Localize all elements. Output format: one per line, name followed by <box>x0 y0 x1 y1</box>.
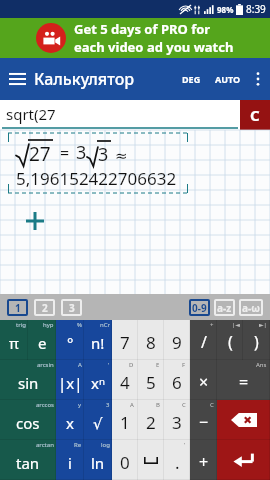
staticText: each video ad you watch <box>74 38 234 56</box>
staticText: arccos <box>36 401 54 409</box>
staticText: ' <box>108 361 110 369</box>
staticText: Калькулятор <box>34 68 135 90</box>
button[interactable]: DEG <box>177 64 206 94</box>
staticText: n! <box>91 333 105 353</box>
button[interactable]: + <box>190 440 217 480</box>
button[interactable]: A <box>56 360 84 400</box>
other: Enter <box>233 452 255 468</box>
button[interactable]: a-z <box>217 299 232 316</box>
button[interactable]: A <box>112 400 138 440</box>
button[interactable]: × <box>190 360 217 400</box>
staticText: 8 <box>146 331 156 354</box>
staticText: 6 <box>172 371 182 394</box>
button[interactable]: B <box>138 400 164 440</box>
button[interactable]: E <box>138 360 164 400</box>
button[interactable]: F <box>164 360 190 400</box>
staticText: 7 <box>120 331 130 354</box>
staticText: arcsin <box>37 361 54 369</box>
button[interactable]: C <box>164 400 190 440</box>
staticText: ( <box>228 331 233 353</box>
button[interactable]: AUTO <box>210 64 246 94</box>
staticText: a-ω <box>242 301 260 315</box>
button[interactable]: Enter <box>217 440 270 480</box>
button[interactable]: Add new expression <box>24 210 46 232</box>
staticText: tan <box>16 453 40 473</box>
button[interactable]: % <box>56 320 84 360</box>
button[interactable]: arcsin <box>0 360 56 400</box>
button[interactable]: 3 <box>84 400 112 440</box>
button[interactable]: |◄ <box>217 320 243 360</box>
staticText: nCr <box>100 321 110 329</box>
staticText: sqrt(27 <box>6 104 56 124</box>
staticText: = <box>60 142 70 164</box>
staticText: ' <box>184 441 186 449</box>
button[interactable]: 8 <box>138 320 164 360</box>
button[interactable]: arctan <box>0 440 56 480</box>
button[interactable]: 1 <box>10 299 25 316</box>
button[interactable]: nCr <box>84 320 112 360</box>
staticText: 5,196152422706632 <box>16 167 177 190</box>
staticText: ≈ <box>115 147 128 164</box>
button[interactable]: arccos <box>0 400 56 440</box>
button[interactable]: hyp <box>28 320 56 360</box>
staticText: √ <box>93 415 103 432</box>
button[interactable]: 9 <box>164 320 190 360</box>
button[interactable]: 0-9 <box>192 299 207 316</box>
staticText: trig <box>16 321 26 329</box>
staticText: C <box>210 401 214 409</box>
staticText: e <box>38 333 47 353</box>
button[interactable]: ' <box>164 440 190 480</box>
staticText: 8:39 <box>246 2 266 16</box>
button[interactable]: Get 5 days of PRO for <box>0 18 270 58</box>
staticText: 0 <box>120 451 130 474</box>
staticText: ° <box>67 333 74 353</box>
staticText: i <box>68 453 72 473</box>
button[interactable]: ►| <box>243 320 270 360</box>
staticText: 98% <box>217 4 234 15</box>
staticText: π <box>9 333 19 353</box>
button[interactable]: More options <box>246 67 270 91</box>
button[interactable]: ' <box>84 360 112 400</box>
button[interactable]: 2 <box>37 299 52 316</box>
staticText: F <box>182 361 186 369</box>
button[interactable]: C <box>240 100 270 130</box>
button[interactable]: log <box>84 440 112 480</box>
button[interactable]: 7 <box>112 320 138 360</box>
staticText: DEG <box>182 73 201 85</box>
staticText: AUTO <box>215 73 241 85</box>
staticText: y <box>78 401 82 409</box>
button[interactable]: + <box>190 320 217 360</box>
staticText: 3 <box>76 140 87 165</box>
button[interactable]: a-ω <box>242 299 260 316</box>
staticText: + <box>210 321 214 329</box>
staticText: × <box>199 371 209 393</box>
staticText: D <box>129 361 134 369</box>
button[interactable]: Open navigation menu <box>0 62 34 96</box>
staticText: − <box>199 411 209 433</box>
staticText: cos <box>16 413 40 433</box>
staticText: sin <box>18 373 39 393</box>
button[interactable]: trig <box>0 320 28 360</box>
button[interactable]: sqrt(27 <box>0 100 240 130</box>
staticText: 5 <box>146 371 156 394</box>
staticText: ►| <box>259 321 267 329</box>
staticText: 3 <box>98 142 109 167</box>
staticText: 4 <box>120 371 130 394</box>
button[interactable]: D <box>112 360 138 400</box>
button[interactable]: y <box>56 400 84 440</box>
staticText: xⁿ <box>91 373 105 393</box>
other: Space <box>144 457 158 464</box>
button[interactable]: 0 <box>112 440 138 480</box>
staticText: Ans <box>256 361 267 369</box>
button[interactable]: Backspace <box>217 400 270 440</box>
button[interactable]: Space <box>138 440 164 480</box>
button[interactable]: C <box>190 400 217 440</box>
staticText: 3 <box>69 301 75 315</box>
button[interactable]: Re <box>56 440 84 480</box>
button[interactable]: Ans <box>217 360 270 400</box>
staticText: A <box>78 361 82 369</box>
staticText: 27 <box>29 141 51 167</box>
staticText: 1 <box>120 411 130 434</box>
button[interactable]: 3 <box>64 299 79 316</box>
staticText: 1 <box>15 301 21 315</box>
